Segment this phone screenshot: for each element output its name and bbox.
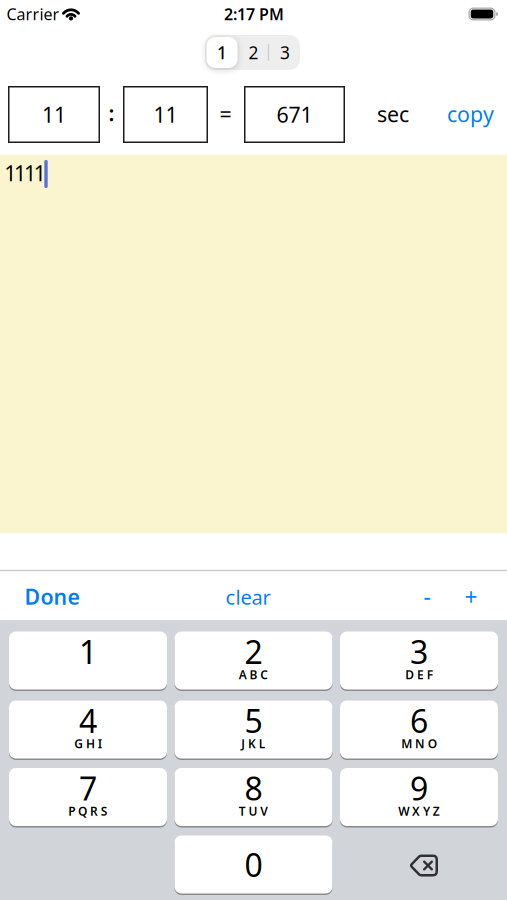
button[interactable]: copy xyxy=(447,100,494,128)
button[interactable]: 1 xyxy=(206,37,237,68)
button[interactable]: clear xyxy=(225,584,270,610)
staticText: 4 xyxy=(79,699,97,742)
staticText: JKL xyxy=(241,735,266,751)
staticText: copy xyxy=(447,100,494,128)
staticText: 3 xyxy=(280,41,290,64)
button[interactable]: 2 xyxy=(174,631,332,691)
staticText: 6 xyxy=(410,699,428,742)
staticText: 0 xyxy=(244,843,262,886)
staticText: DEF xyxy=(405,666,433,682)
staticText: 1111 xyxy=(4,159,46,187)
staticText: 5 xyxy=(244,699,262,742)
staticText: 8 xyxy=(244,767,262,809)
staticText: 3 xyxy=(410,630,428,673)
button[interactable]: - xyxy=(423,581,430,611)
staticText: WXYZ xyxy=(398,803,440,819)
staticText: 2 xyxy=(244,630,262,673)
button[interactable]: 8 xyxy=(174,768,332,828)
staticText: Carrier xyxy=(6,3,59,25)
staticText: = xyxy=(219,100,231,128)
staticText: 7 xyxy=(79,767,97,809)
staticText: 11 xyxy=(153,100,177,129)
staticText: 9 xyxy=(410,767,428,809)
staticText: 2:17 PM xyxy=(224,3,284,25)
button[interactable]: 3 xyxy=(269,37,300,68)
button[interactable]: Delete xyxy=(345,836,503,894)
staticText: clear xyxy=(225,584,270,610)
staticText: - xyxy=(423,581,430,611)
staticText: PQRS xyxy=(68,803,108,819)
staticText: : xyxy=(108,99,114,127)
staticText: 2 xyxy=(248,41,258,64)
button[interactable]: 9 xyxy=(340,768,498,828)
button[interactable]: 1 xyxy=(9,631,167,691)
button[interactable]: Minutes xyxy=(8,86,100,143)
staticText: TUV xyxy=(239,803,268,819)
button[interactable]: Done xyxy=(24,582,79,611)
button[interactable]: Total seconds xyxy=(244,86,345,143)
staticText: GHI xyxy=(74,735,102,751)
button[interactable]: 7 xyxy=(9,768,167,828)
staticText: 671 xyxy=(276,100,312,129)
staticText: 11 xyxy=(42,100,66,129)
staticText: sec xyxy=(377,100,409,128)
button[interactable]: Seconds xyxy=(123,86,208,143)
button[interactable]: 6 xyxy=(340,700,498,760)
button[interactable]: 5 xyxy=(174,700,332,760)
staticText: ABC xyxy=(239,666,268,682)
button[interactable]: 2 xyxy=(238,37,269,68)
button[interactable]: 4 xyxy=(9,700,167,760)
button[interactable]: + xyxy=(464,582,477,612)
staticText: MNO xyxy=(401,735,437,751)
staticText: + xyxy=(464,582,477,612)
button[interactable]: 3 xyxy=(340,631,498,691)
staticText: 1 xyxy=(79,630,97,673)
staticText: 1 xyxy=(217,41,227,64)
button[interactable]: 0 xyxy=(174,835,332,895)
staticText: Done xyxy=(24,582,79,611)
